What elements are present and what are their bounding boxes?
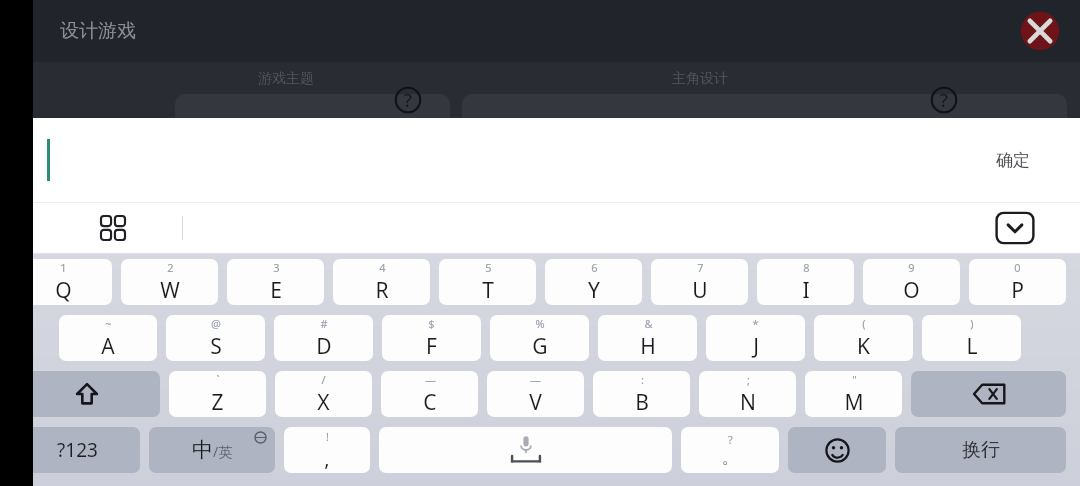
button[interactable]: 中 [149, 427, 275, 473]
staticText: 7 [697, 260, 704, 275]
staticText: & [644, 316, 653, 331]
staticText: 9 [908, 260, 915, 275]
button[interactable]: 9 [863, 259, 960, 305]
button[interactable]: Close [1018, 9, 1062, 53]
staticText: W [160, 276, 180, 305]
staticText: 3 [273, 260, 280, 275]
staticText: ! [326, 429, 329, 444]
staticText: H [640, 332, 656, 361]
button[interactable]: 3 [227, 259, 324, 305]
staticText: @ [211, 316, 221, 331]
staticText: D [316, 332, 332, 361]
button[interactable]: ~ [59, 315, 157, 361]
staticText: C [423, 388, 437, 417]
button[interactable]: 换行 [895, 427, 1066, 473]
staticText: J [753, 332, 759, 361]
button[interactable]: 7 [651, 259, 748, 305]
button[interactable]: 4 [333, 259, 430, 305]
button[interactable]: — [381, 371, 478, 417]
staticText: Y [588, 276, 600, 305]
button[interactable]: 6 [545, 259, 642, 305]
staticText: B [635, 388, 649, 417]
staticText: M [844, 388, 864, 417]
button[interactable]: @ [166, 315, 265, 361]
staticText: 0 [1014, 260, 1021, 275]
button[interactable]: Keyboard layouts [90, 205, 136, 251]
button[interactable]: : [593, 371, 690, 417]
staticText: ? [728, 432, 733, 447]
button[interactable]: Backspace [911, 371, 1066, 417]
button[interactable]: & [598, 315, 697, 361]
button[interactable]: 1 [14, 259, 112, 305]
button[interactable]: * [706, 315, 805, 361]
staticText: — [530, 372, 541, 387]
button[interactable]: / [275, 371, 372, 417]
staticText: Z [211, 388, 224, 417]
button[interactable]: 2 [121, 259, 218, 305]
button[interactable]: " [805, 371, 902, 417]
staticText: ) [970, 316, 974, 331]
button[interactable]: Emoji [788, 427, 886, 473]
staticText: # [320, 316, 328, 331]
button[interactable]: 8 [757, 259, 854, 305]
button[interactable]: # [274, 315, 373, 361]
staticText: 设计游戏 [60, 19, 136, 43]
staticText: ; [747, 372, 750, 387]
button[interactable]: % [490, 315, 589, 361]
staticText: ? [940, 88, 948, 113]
button[interactable]: $ [382, 315, 481, 361]
button[interactable]: ! [284, 427, 370, 473]
staticText: 确定 [996, 150, 1030, 171]
staticText: % [535, 316, 545, 331]
staticText: O [903, 276, 920, 305]
button[interactable]: ; [699, 371, 796, 417]
staticText: 5 [485, 260, 492, 275]
button[interactable]: Space [379, 427, 672, 473]
staticText: 4 [379, 260, 386, 275]
staticText: Q [55, 276, 72, 305]
staticText: 游戏主题 [258, 70, 314, 88]
staticText: I [802, 276, 810, 305]
staticText: $ [428, 316, 435, 331]
staticText: — [425, 372, 436, 387]
staticText: P [1011, 276, 1024, 305]
staticText: ?123 [57, 437, 98, 463]
staticText: K [857, 332, 870, 361]
button[interactable]: 5 [439, 259, 536, 305]
staticText: G [532, 332, 548, 361]
other: Space [497, 435, 555, 465]
button[interactable]: ?123 [14, 427, 140, 473]
button[interactable]: 确定 [996, 150, 1030, 171]
staticText: " [852, 372, 857, 387]
button[interactable]: ` [169, 371, 266, 417]
button[interactable]: 0 [969, 259, 1066, 305]
staticText: A [101, 332, 115, 361]
staticText: 6 [591, 260, 598, 275]
staticText: U [692, 276, 708, 305]
button[interactable] [14, 371, 160, 417]
staticText: E [270, 276, 282, 305]
button[interactable]: ) [922, 315, 1021, 361]
button[interactable]: Hide keyboard [992, 210, 1038, 246]
staticText: ~ [105, 316, 112, 331]
staticText: V [529, 388, 542, 417]
staticText: , [324, 445, 330, 472]
staticText: 2 [167, 260, 174, 275]
staticText: T [482, 276, 494, 305]
staticText: ` [216, 372, 220, 387]
button[interactable]: ? [681, 427, 779, 473]
other: Backspace [972, 383, 1006, 405]
staticText: F [426, 332, 437, 361]
other: Emoji [825, 438, 850, 463]
staticText: 中 [192, 437, 213, 463]
staticText: ( [862, 316, 866, 331]
staticText: S [210, 332, 222, 361]
staticText: L [966, 332, 978, 361]
staticText: /英 [213, 442, 233, 461]
button[interactable]: ( [814, 315, 913, 361]
staticText: N [740, 388, 756, 417]
staticText: 1 [60, 260, 67, 275]
button[interactable]: — [487, 371, 584, 417]
staticText: ? [404, 88, 412, 113]
staticText: : [641, 372, 644, 387]
